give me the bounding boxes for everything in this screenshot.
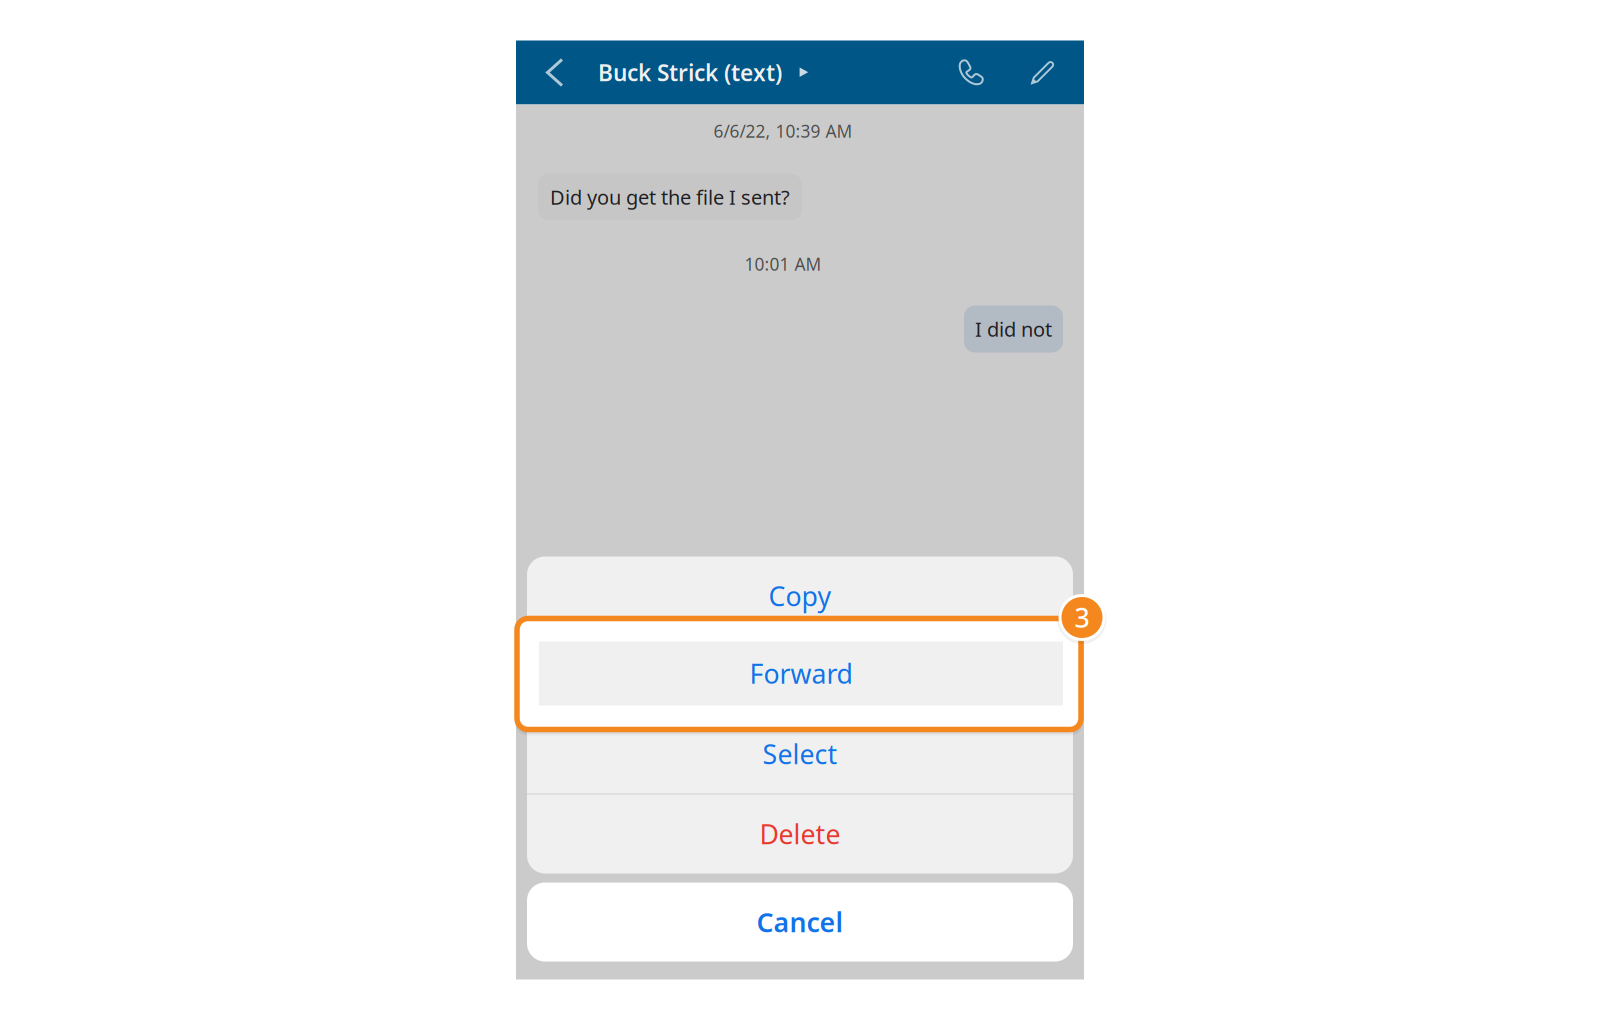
button[interactable]: Delete xyxy=(527,794,1073,873)
button[interactable]: Buck Strick (text) xyxy=(598,40,815,104)
staticText: Buck Strick (text) xyxy=(598,57,782,87)
staticText: Cancel xyxy=(756,904,843,940)
button[interactable]: Compose xyxy=(1002,40,1084,104)
staticText: 10:01 AM xyxy=(744,252,821,275)
staticText: Forward xyxy=(748,657,851,693)
button[interactable]: Back xyxy=(516,40,598,104)
staticText: Select xyxy=(762,736,837,772)
button[interactable]: Select xyxy=(527,714,1073,793)
button[interactable]: Call xyxy=(940,40,1002,104)
staticText: 6/6/22, 10:39 AM xyxy=(713,119,852,142)
button[interactable]: Copy xyxy=(527,556,1073,635)
staticText: Delete xyxy=(759,816,840,852)
button[interactable]: Cancel xyxy=(527,882,1073,961)
staticText: Forward xyxy=(749,656,852,691)
staticText: Did you get the file I sent? xyxy=(550,184,790,210)
staticText: I did not xyxy=(975,316,1052,342)
staticText: 3 xyxy=(1074,600,1089,635)
staticText: Copy xyxy=(768,578,831,614)
button[interactable]: Forward xyxy=(515,615,1083,732)
button[interactable]: Forward xyxy=(527,635,1073,714)
